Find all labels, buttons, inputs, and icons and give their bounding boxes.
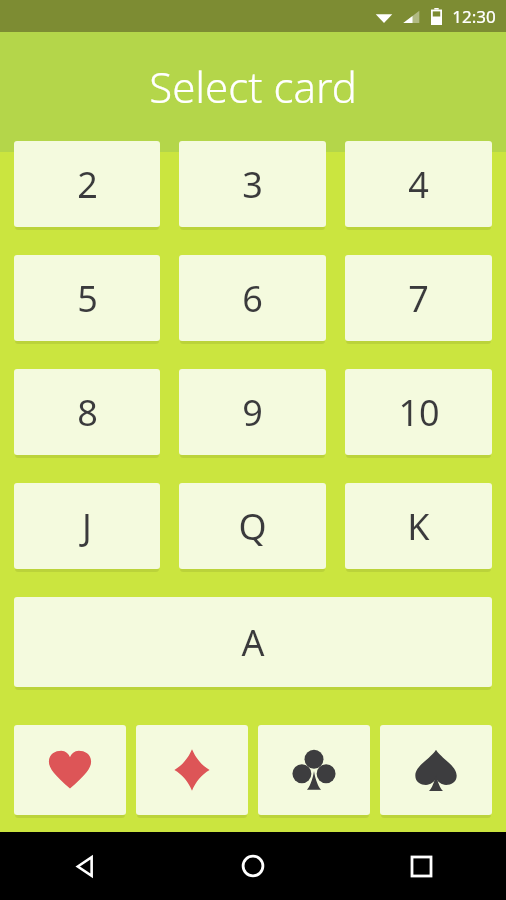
button[interactable]: 10: [345, 369, 492, 455]
staticText: 5: [77, 274, 98, 323]
button[interactable]: Home: [168, 832, 337, 900]
staticText: 6: [242, 274, 263, 323]
button[interactable]: 9: [179, 369, 326, 455]
staticText: A: [241, 618, 265, 667]
button[interactable]: Diamonds: [136, 725, 248, 815]
button[interactable]: Back: [0, 832, 168, 900]
staticText: 3: [242, 160, 263, 209]
button[interactable]: 2: [14, 141, 160, 227]
button[interactable]: Recent apps: [337, 832, 506, 900]
button[interactable]: 6: [179, 255, 326, 341]
button[interactable]: Clubs: [258, 725, 370, 815]
staticText: Select card: [149, 58, 357, 115]
button[interactable]: 7: [345, 255, 492, 341]
button[interactable]: 5: [14, 255, 160, 341]
button[interactable]: K: [345, 483, 492, 569]
button[interactable]: 4: [345, 141, 492, 227]
staticText: 2: [77, 160, 98, 209]
button[interactable]: Hearts: [14, 725, 126, 815]
staticText: 4: [408, 160, 429, 209]
staticText: K: [407, 502, 430, 551]
button[interactable]: 8: [14, 369, 160, 455]
staticText: 9: [242, 388, 263, 437]
button[interactable]: 3: [179, 141, 326, 227]
staticText: Q: [238, 502, 267, 551]
button[interactable]: J: [14, 483, 160, 569]
button[interactable]: A: [14, 597, 492, 687]
staticText: J: [82, 502, 92, 551]
staticText: 7: [408, 274, 429, 323]
staticText: 12:30: [452, 5, 496, 28]
button[interactable]: Spades: [380, 725, 492, 815]
staticText: 10: [398, 388, 440, 437]
staticText: 8: [77, 388, 98, 437]
button[interactable]: Q: [179, 483, 326, 569]
